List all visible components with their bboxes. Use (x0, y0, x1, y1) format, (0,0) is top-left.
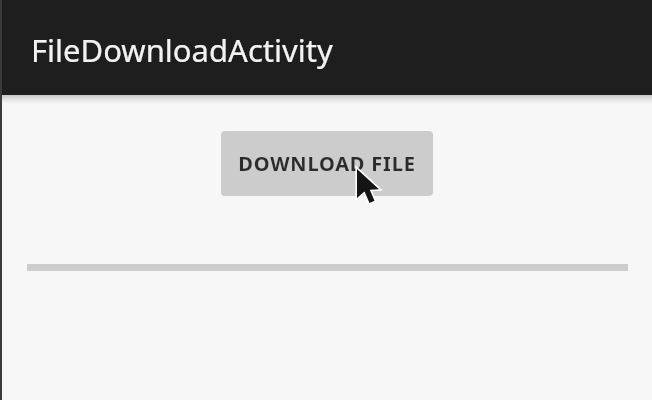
button[interactable]: DOWNLOAD FILE (221, 131, 433, 196)
other: Pointer (352, 165, 386, 209)
staticText: FileDownloadActivity (31, 29, 333, 71)
staticText: DOWNLOAD FILE (238, 150, 416, 177)
